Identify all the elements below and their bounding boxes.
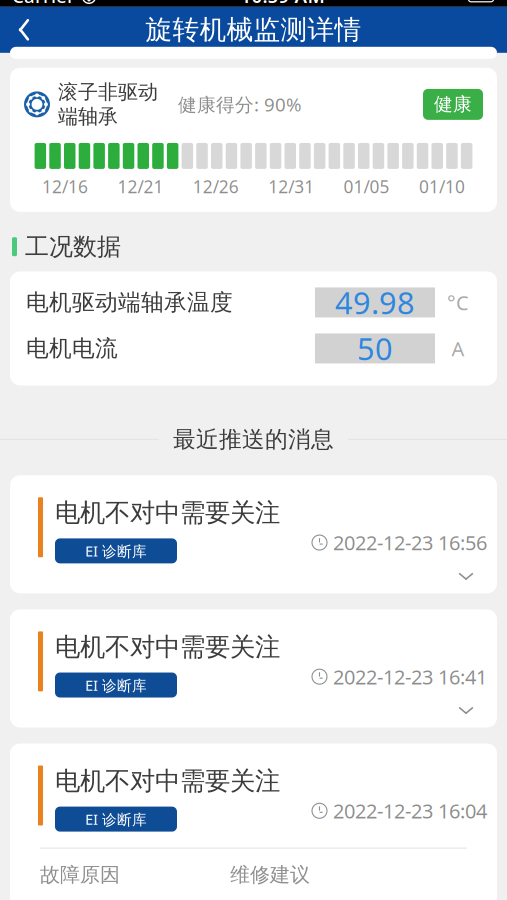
button[interactable]: 电机不对中需要关注	[10, 609, 497, 727]
staticText: 49.98	[335, 282, 415, 323]
staticText: 2022-12-23 16:41	[333, 663, 487, 690]
staticText: EI 诊断库	[85, 541, 147, 561]
staticText: 故障原因	[40, 863, 120, 887]
staticText: 电机不对中需要关注	[55, 765, 280, 797]
button[interactable]: 电机不对中需要关注	[10, 743, 497, 900]
staticText: 12/16	[42, 175, 88, 198]
staticText: 12/26	[193, 175, 239, 198]
staticText: 健康得分: 90%	[178, 92, 302, 117]
staticText: 工况数据	[25, 232, 121, 261]
staticText: 2022-12-23 16:04	[333, 797, 487, 824]
staticText: 10:59 AM	[240, 0, 324, 8]
staticText: 滚子非驱动端轴承	[58, 80, 158, 129]
staticText: 12/31	[268, 175, 314, 198]
button[interactable]: Back	[0, 9, 48, 51]
staticText: °C	[447, 289, 469, 316]
staticText: 最近推送的消息	[173, 425, 334, 453]
staticText: 01/05	[344, 175, 390, 198]
staticText: 电机电流	[26, 334, 118, 362]
staticText: 电机不对中需要关注	[55, 497, 280, 528]
staticText: 维修建议	[230, 863, 310, 887]
staticText: 电机驱动端轴承温度	[26, 288, 233, 316]
staticText: 2022-12-23 16:56	[333, 529, 487, 556]
staticText: 01/10	[419, 175, 465, 198]
button[interactable]: 电机不对中需要关注	[10, 475, 497, 593]
staticText: 50	[357, 328, 393, 369]
staticText: EI 诊断库	[85, 809, 147, 829]
staticText: EI 诊断库	[85, 675, 147, 695]
staticText: A	[451, 335, 464, 362]
staticText: 健康	[434, 93, 472, 116]
staticText: 旋转机械监测详情	[145, 13, 361, 46]
staticText: Carrier	[12, 0, 75, 8]
staticText: 12/21	[117, 175, 163, 198]
staticText: 电机不对中需要关注	[55, 631, 280, 662]
